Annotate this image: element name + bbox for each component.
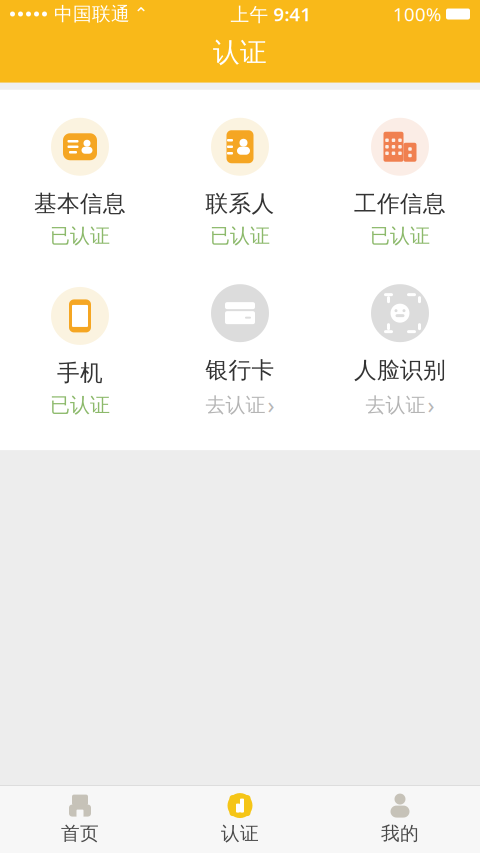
staticText: 去认证 bbox=[365, 393, 425, 417]
staticText: 认证 bbox=[213, 36, 267, 69]
staticText: 上午 9:41 bbox=[230, 2, 311, 26]
button[interactable]: 银行卡 bbox=[160, 280, 320, 424]
staticText: 认证 bbox=[221, 822, 259, 845]
staticText: 100% bbox=[393, 2, 442, 26]
staticText: › bbox=[427, 390, 434, 420]
staticText: 基本信息 bbox=[34, 190, 126, 218]
staticText: 中国联通 bbox=[54, 2, 130, 25]
staticText: 联系人 bbox=[205, 190, 274, 218]
staticText: 已认证 bbox=[50, 393, 110, 417]
button[interactable]: 工作信息 bbox=[320, 114, 480, 252]
staticText: 人脸识别 bbox=[354, 356, 446, 384]
button[interactable]: 人脸识别 bbox=[320, 280, 480, 424]
button[interactable]: 首页 bbox=[0, 786, 160, 853]
staticText: ⌃ bbox=[134, 4, 149, 24]
staticText: 已认证 bbox=[370, 224, 430, 248]
staticText: 银行卡 bbox=[205, 356, 274, 384]
staticText: 已认证 bbox=[50, 224, 110, 248]
staticText: 已认证 bbox=[210, 224, 270, 248]
staticText: 工作信息 bbox=[354, 190, 446, 218]
button[interactable]: 基本信息 bbox=[0, 114, 160, 252]
button[interactable]: 认证 bbox=[160, 786, 320, 853]
button[interactable]: 我的 bbox=[320, 786, 480, 853]
button[interactable]: 手机 bbox=[0, 283, 160, 421]
staticText: 手机 bbox=[57, 359, 103, 387]
staticText: 首页 bbox=[61, 822, 99, 845]
button[interactable]: 联系人 bbox=[160, 114, 320, 252]
staticText: 去认证 bbox=[205, 393, 265, 417]
staticText: › bbox=[267, 390, 274, 420]
staticText: 我的 bbox=[381, 822, 419, 845]
